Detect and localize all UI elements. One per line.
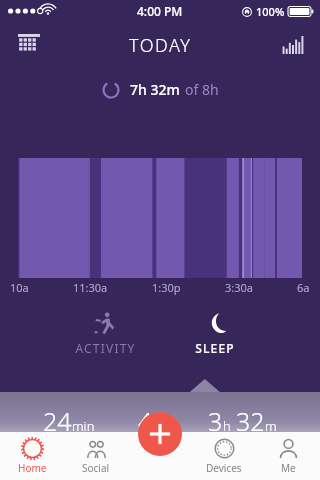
staticText: Social bbox=[82, 461, 110, 475]
staticText: 100% bbox=[256, 4, 285, 19]
staticText: TODAY bbox=[129, 33, 192, 58]
staticText: 1:30p bbox=[152, 280, 181, 295]
staticText: 3:30a bbox=[225, 280, 253, 295]
staticText: of 8h bbox=[185, 80, 219, 99]
staticText: 24 bbox=[43, 404, 72, 438]
staticText: 4 bbox=[138, 404, 153, 438]
staticText: Devices bbox=[206, 461, 242, 475]
button[interactable]: Devices bbox=[192, 432, 256, 480]
staticText: 10a bbox=[10, 280, 29, 295]
button[interactable]: Home bbox=[0, 432, 64, 480]
staticText: SLEEP bbox=[195, 340, 235, 356]
staticText: m bbox=[265, 417, 277, 435]
button[interactable]: Calendar bbox=[12, 28, 46, 62]
button[interactable]: Me bbox=[256, 432, 320, 480]
button[interactable]: Stats bbox=[276, 28, 310, 62]
staticText: ACTIVITY bbox=[75, 340, 136, 356]
staticText: 32 bbox=[236, 404, 265, 438]
button[interactable]: 3 bbox=[208, 404, 277, 438]
staticText: 3 bbox=[208, 404, 223, 438]
staticText: min bbox=[72, 417, 95, 435]
staticText: Me bbox=[281, 461, 296, 475]
button[interactable]: 4 bbox=[138, 404, 166, 438]
button[interactable]: Add bbox=[138, 412, 182, 456]
button[interactable]: 24 bbox=[43, 404, 95, 438]
staticText: 7h 32m bbox=[130, 80, 180, 99]
button[interactable]: ACTIVITY bbox=[50, 312, 160, 356]
button[interactable]: Social bbox=[64, 432, 128, 480]
staticText: 4:00 PM bbox=[137, 3, 183, 19]
staticText: h bbox=[223, 417, 231, 435]
staticText: 6a bbox=[297, 280, 310, 295]
staticText: Home bbox=[18, 461, 47, 475]
button[interactable]: SLEEP bbox=[160, 312, 270, 356]
staticText: 11:30a bbox=[73, 280, 108, 295]
staticText: hr bbox=[153, 417, 166, 435]
